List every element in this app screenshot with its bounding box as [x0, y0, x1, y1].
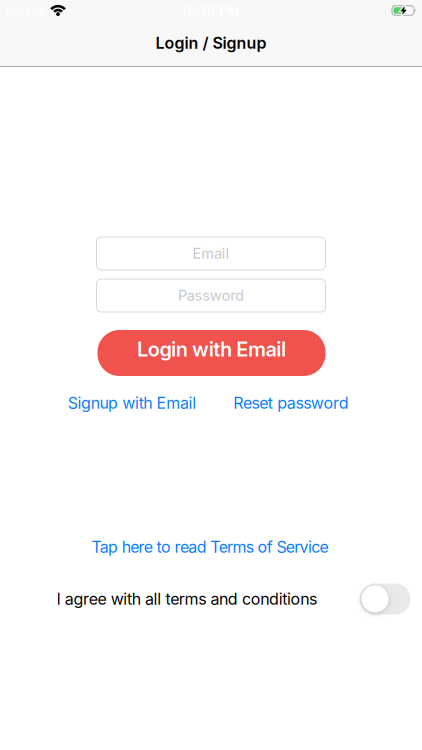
staticText: Login / Signup [155, 34, 266, 52]
button[interactable]: Reset password [233, 394, 349, 412]
textField[interactable]: Email [96, 237, 325, 270]
staticText: I agree with all terms and conditions [56, 590, 317, 608]
staticText: Email [193, 245, 229, 262]
staticText: Login with Email [137, 337, 286, 361]
button[interactable]: Tap here to read Terms of Service [91, 538, 329, 556]
textField[interactable]: Password [96, 279, 325, 312]
button[interactable]: Signup with Email [68, 394, 196, 412]
staticText: Password [178, 287, 244, 304]
staticText: Tap here to read Terms of Service [91, 538, 329, 556]
button[interactable]: Login with Email [97, 330, 325, 376]
button[interactable]: I agree with all terms and conditions [56, 581, 410, 617]
staticText: Reset password [233, 394, 349, 412]
staticText: Signup with Email [68, 394, 196, 412]
